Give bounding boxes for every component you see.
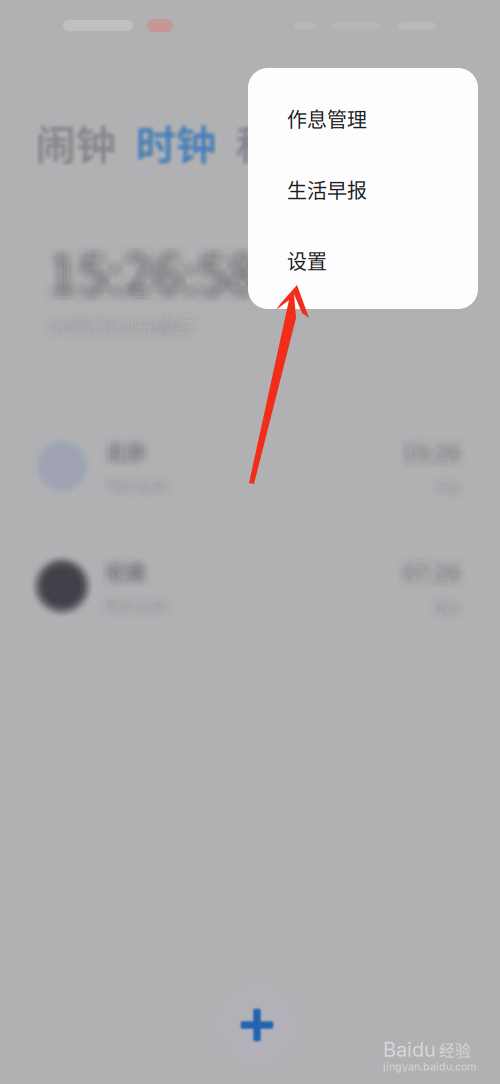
staticText: 今天 xyxy=(433,481,459,501)
staticText: 今天 xyxy=(442,483,468,503)
staticText: 昨天 xyxy=(442,600,468,619)
staticText: 秒表 xyxy=(232,114,312,172)
staticText: 北京 xyxy=(99,440,139,469)
staticText: 北京 xyxy=(110,437,150,466)
staticText: 今天 xyxy=(431,481,457,501)
staticText: 北京 xyxy=(99,435,139,464)
staticText: 2020年3月18日 星期三 xyxy=(48,308,197,330)
staticText: 伦敦 xyxy=(99,555,139,584)
staticText: 秒表 xyxy=(236,115,316,173)
staticText: 15:26:58 xyxy=(50,236,260,314)
staticText: 今天 xyxy=(439,481,465,501)
staticText: 北京 xyxy=(104,442,144,471)
staticText: 北京 xyxy=(104,439,144,468)
staticText: 07:26 xyxy=(410,559,468,591)
staticText: 闹钟 xyxy=(38,115,118,173)
staticText: 2020年3月18日 星期三 xyxy=(50,313,199,334)
staticText: 昨天 xyxy=(431,590,457,610)
staticText: 时钟 xyxy=(140,109,220,167)
staticText: 秒表 xyxy=(235,112,315,170)
staticText: 07:26 xyxy=(403,557,461,590)
staticText: 今天 xyxy=(431,478,457,497)
staticText: 秒表 xyxy=(240,117,320,174)
staticText: 昨天 xyxy=(437,601,463,621)
staticText: 伦敦 xyxy=(111,553,151,582)
staticText: 时钟 xyxy=(137,109,217,167)
staticText: 昨天 xyxy=(428,601,454,621)
staticText: 北京 xyxy=(110,442,150,471)
staticText: 伦敦 xyxy=(106,564,146,593)
staticText: 闹钟 xyxy=(40,109,120,167)
button[interactable]: 设置 xyxy=(248,225,478,296)
staticText: 昨天 23:26 xyxy=(99,603,160,622)
staticText: 今天 xyxy=(431,480,457,499)
staticText: 时钟 xyxy=(135,109,215,167)
staticText: 北京 xyxy=(108,435,148,464)
staticText: 闹钟 xyxy=(38,109,118,167)
staticText: 时钟 xyxy=(135,117,215,174)
staticText: 今天 xyxy=(428,483,454,503)
button[interactable]: 生活早报 xyxy=(248,154,478,225)
staticText: 昨天 23:26 xyxy=(111,603,172,622)
staticText: 伦敦 xyxy=(104,555,144,584)
staticText: 今天 15:26 xyxy=(108,472,169,491)
staticText: 昨天 23:26 xyxy=(100,596,161,615)
staticText: 今天 xyxy=(429,480,455,499)
staticText: 15:26 xyxy=(397,437,455,470)
staticText: 伦敦 xyxy=(113,555,153,584)
staticText: 闹钟 xyxy=(32,109,112,167)
staticText: 15:26 xyxy=(399,440,457,473)
staticText: 时钟 xyxy=(138,115,218,173)
staticText: 闹钟 xyxy=(40,117,120,174)
staticText: 15:26:58 xyxy=(50,239,260,316)
staticText: 今天 15:26 xyxy=(110,481,171,501)
staticText: 时钟 xyxy=(134,109,214,167)
staticText: 北京 xyxy=(104,437,144,466)
staticText: 15:26:58 xyxy=(50,232,260,309)
staticText: 2020年3月18日 星期三 xyxy=(39,315,188,336)
staticText: 15:26:58 xyxy=(57,225,267,302)
staticText: 2020年3月18日 星期三 xyxy=(55,306,204,327)
button[interactable]: 作息管理 xyxy=(248,83,478,154)
staticText: 07:26 xyxy=(399,553,457,586)
staticText: 北京 xyxy=(113,435,153,464)
staticText: 07:26 xyxy=(396,560,454,593)
staticText: 时钟 xyxy=(140,113,220,171)
staticText: 伦敦 xyxy=(100,560,140,589)
staticText: 时钟 xyxy=(136,113,216,171)
staticText: 2020年3月18日 星期三 xyxy=(41,306,190,327)
staticText: 07:26 xyxy=(407,559,465,591)
staticText: 15:26 xyxy=(405,435,463,468)
staticText: 秒表 xyxy=(232,117,312,174)
staticText: 昨天 23:26 xyxy=(106,601,167,621)
staticText: 北京 xyxy=(111,437,151,466)
staticText: 15:26:58 xyxy=(57,236,267,314)
staticText: 昨天 xyxy=(439,605,465,624)
staticText: 昨天 xyxy=(429,605,455,624)
staticText: 伦敦 xyxy=(110,553,150,582)
staticText: 北京 xyxy=(104,433,144,462)
staticText: 今天 15:26 xyxy=(106,470,167,490)
staticText: 今天 15:26 xyxy=(106,472,167,491)
staticText: 今天 15:26 xyxy=(100,481,161,501)
staticText: 伦敦 xyxy=(104,562,144,591)
staticText: 15:26 xyxy=(407,435,465,468)
staticText: 今天 xyxy=(439,485,465,504)
staticText: 07:26 xyxy=(396,548,454,580)
staticText: 北京 xyxy=(106,442,146,471)
staticText: 15:26:58 xyxy=(48,234,258,311)
staticText: 秒表 xyxy=(236,117,316,174)
staticText: 15:26:58 xyxy=(39,241,249,318)
staticText: 今天 15:26 xyxy=(100,483,161,502)
button[interactable]: Add xyxy=(212,980,302,1070)
staticText: 15:26 xyxy=(399,431,457,464)
staticText: 昨天 xyxy=(433,598,459,617)
staticText: 今天 15:26 xyxy=(108,470,169,490)
staticText: 今天 xyxy=(433,485,459,504)
staticText: 今天 xyxy=(437,483,463,503)
staticText: 07:26 xyxy=(401,555,459,588)
staticText: 昨天 23:26 xyxy=(99,598,160,617)
staticText: 秒表 xyxy=(240,111,320,168)
staticText: 今天 15:26 xyxy=(111,483,172,502)
staticText: 15:26:58 xyxy=(52,227,262,305)
